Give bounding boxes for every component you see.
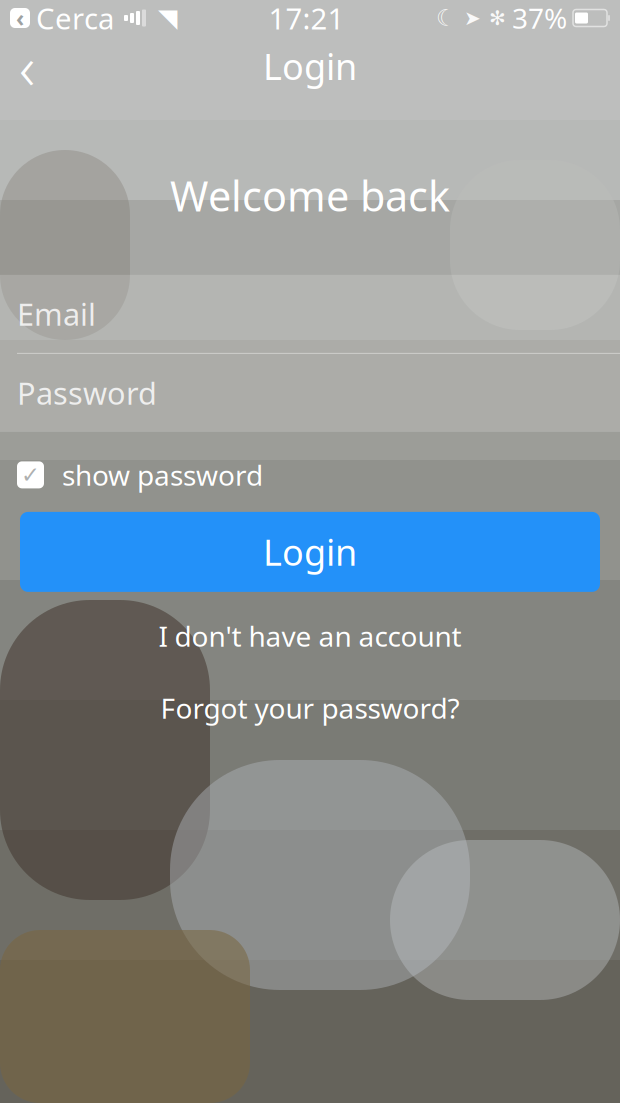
staticText: 37% (512, 0, 567, 37)
button[interactable]: Back (0, 39, 54, 93)
staticText: Login (263, 42, 357, 90)
button[interactable]: I don't have an account (0, 618, 620, 654)
staticText: ☾ (436, 5, 456, 31)
button[interactable]: ✓ (0, 450, 620, 500)
staticText: Cerca (36, 0, 114, 37)
staticText: Password (17, 372, 157, 413)
button[interactable]: Forgot your password? (0, 690, 620, 726)
staticText: Email (17, 293, 96, 334)
staticText: 17:21 (268, 0, 344, 37)
staticText: Welcome back (170, 168, 450, 223)
staticText: ‹ (19, 25, 35, 107)
staticText: ✻ (489, 7, 506, 29)
staticText: ✓ (21, 462, 40, 488)
staticText: ◥ (158, 4, 177, 32)
staticText: show password (62, 456, 263, 493)
button[interactable]: Login (20, 512, 600, 592)
staticText: ‹ (16, 3, 24, 33)
staticText: ➤ (464, 7, 481, 29)
staticText: I don't have an account (158, 617, 461, 654)
staticText: Login (263, 528, 357, 576)
staticText: Forgot your password? (160, 689, 459, 726)
